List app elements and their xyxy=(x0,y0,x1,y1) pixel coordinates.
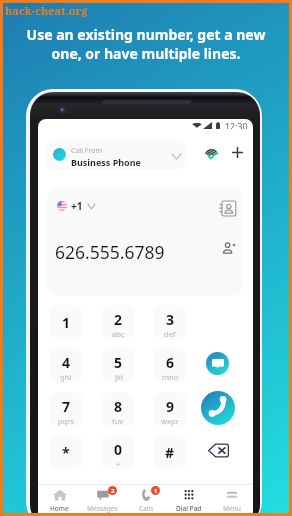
button[interactable]: Add xyxy=(227,142,247,162)
button[interactable]: Add contact xyxy=(219,238,238,257)
staticText: Menu xyxy=(223,504,241,513)
staticText: 9 xyxy=(166,397,175,416)
staticText: def xyxy=(164,329,176,339)
staticText: +1 xyxy=(71,199,83,213)
button[interactable]: 8 xyxy=(101,392,135,426)
staticText: 3 xyxy=(166,310,175,329)
button[interactable]: Wi-Fi calling xyxy=(200,142,222,164)
button[interactable]: 2 xyxy=(81,485,124,516)
staticText: mno xyxy=(162,372,179,382)
staticText: Home xyxy=(50,504,69,513)
staticText: ghi xyxy=(60,372,72,382)
button[interactable]: Contacts xyxy=(215,196,239,220)
staticText: # xyxy=(165,443,175,462)
staticText: Dial Pad xyxy=(176,504,202,513)
button[interactable]: 0 xyxy=(101,435,135,469)
staticText: 0 xyxy=(114,440,123,459)
staticText: 7 xyxy=(62,397,71,416)
staticText: Calls xyxy=(139,504,154,513)
button[interactable]: 1 xyxy=(124,485,167,516)
staticText: + xyxy=(116,459,121,469)
staticText: 12:30 xyxy=(225,121,248,129)
button[interactable]: 5 xyxy=(101,348,135,382)
staticText: Messages xyxy=(87,504,118,513)
staticText: 8 xyxy=(114,397,123,416)
button[interactable]: Menu xyxy=(210,485,253,516)
button[interactable]: Message xyxy=(206,352,229,375)
staticText: pqrs xyxy=(58,416,74,426)
button[interactable]: 9 xyxy=(153,392,187,426)
staticText: 4 xyxy=(62,353,71,372)
staticText: * xyxy=(62,443,70,462)
staticText: tuv xyxy=(112,416,124,426)
staticText: 2 xyxy=(111,487,115,495)
button[interactable]: 1 xyxy=(49,305,83,339)
button[interactable]: # xyxy=(153,435,187,469)
staticText: jkl xyxy=(115,372,123,382)
button[interactable]: 7 xyxy=(49,392,83,426)
button[interactable]: Call xyxy=(201,391,235,425)
staticText: 1 xyxy=(62,313,71,332)
button[interactable]: 3 xyxy=(153,305,187,339)
button[interactable]: Dial Pad xyxy=(167,485,210,516)
staticText: 1 xyxy=(154,487,158,495)
button[interactable]: 2 xyxy=(101,305,135,339)
staticText: 626.555.6789 xyxy=(55,240,165,264)
button[interactable]: 6 xyxy=(153,348,187,382)
button[interactable]: Call From xyxy=(45,140,186,170)
staticText: 5 xyxy=(114,353,123,372)
staticText: abc xyxy=(112,329,125,339)
staticText: 2 xyxy=(114,310,123,329)
staticText: 6 xyxy=(166,353,175,372)
button[interactable]: +1 xyxy=(48,194,102,218)
button[interactable]: Home xyxy=(38,485,81,516)
staticText: Call From xyxy=(71,146,102,156)
staticText: hack-cheat.org xyxy=(5,3,88,18)
button[interactable]: * xyxy=(49,435,83,469)
staticText: Use an existing number, get a new one, o… xyxy=(0,25,292,63)
button[interactable]: 4 xyxy=(49,348,83,382)
staticText: Business Phone xyxy=(71,156,141,168)
staticText: wxyz xyxy=(161,416,179,426)
button[interactable]: Backspace xyxy=(204,436,232,464)
